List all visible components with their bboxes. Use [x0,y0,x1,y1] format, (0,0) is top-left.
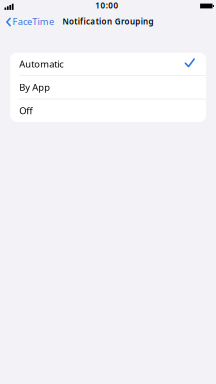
staticText: FaceTime [12,15,54,28]
staticText: Automatic [19,58,63,70]
button[interactable]: By App [10,76,206,99]
staticText: Notification Grouping [62,16,153,27]
staticText: 10:00 [95,0,118,11]
button[interactable]: Back [0,15,54,28]
staticText: By App [19,81,50,93]
staticText: Off [19,104,32,117]
button[interactable]: Off [10,99,206,122]
button[interactable]: Automatic [10,52,206,75]
